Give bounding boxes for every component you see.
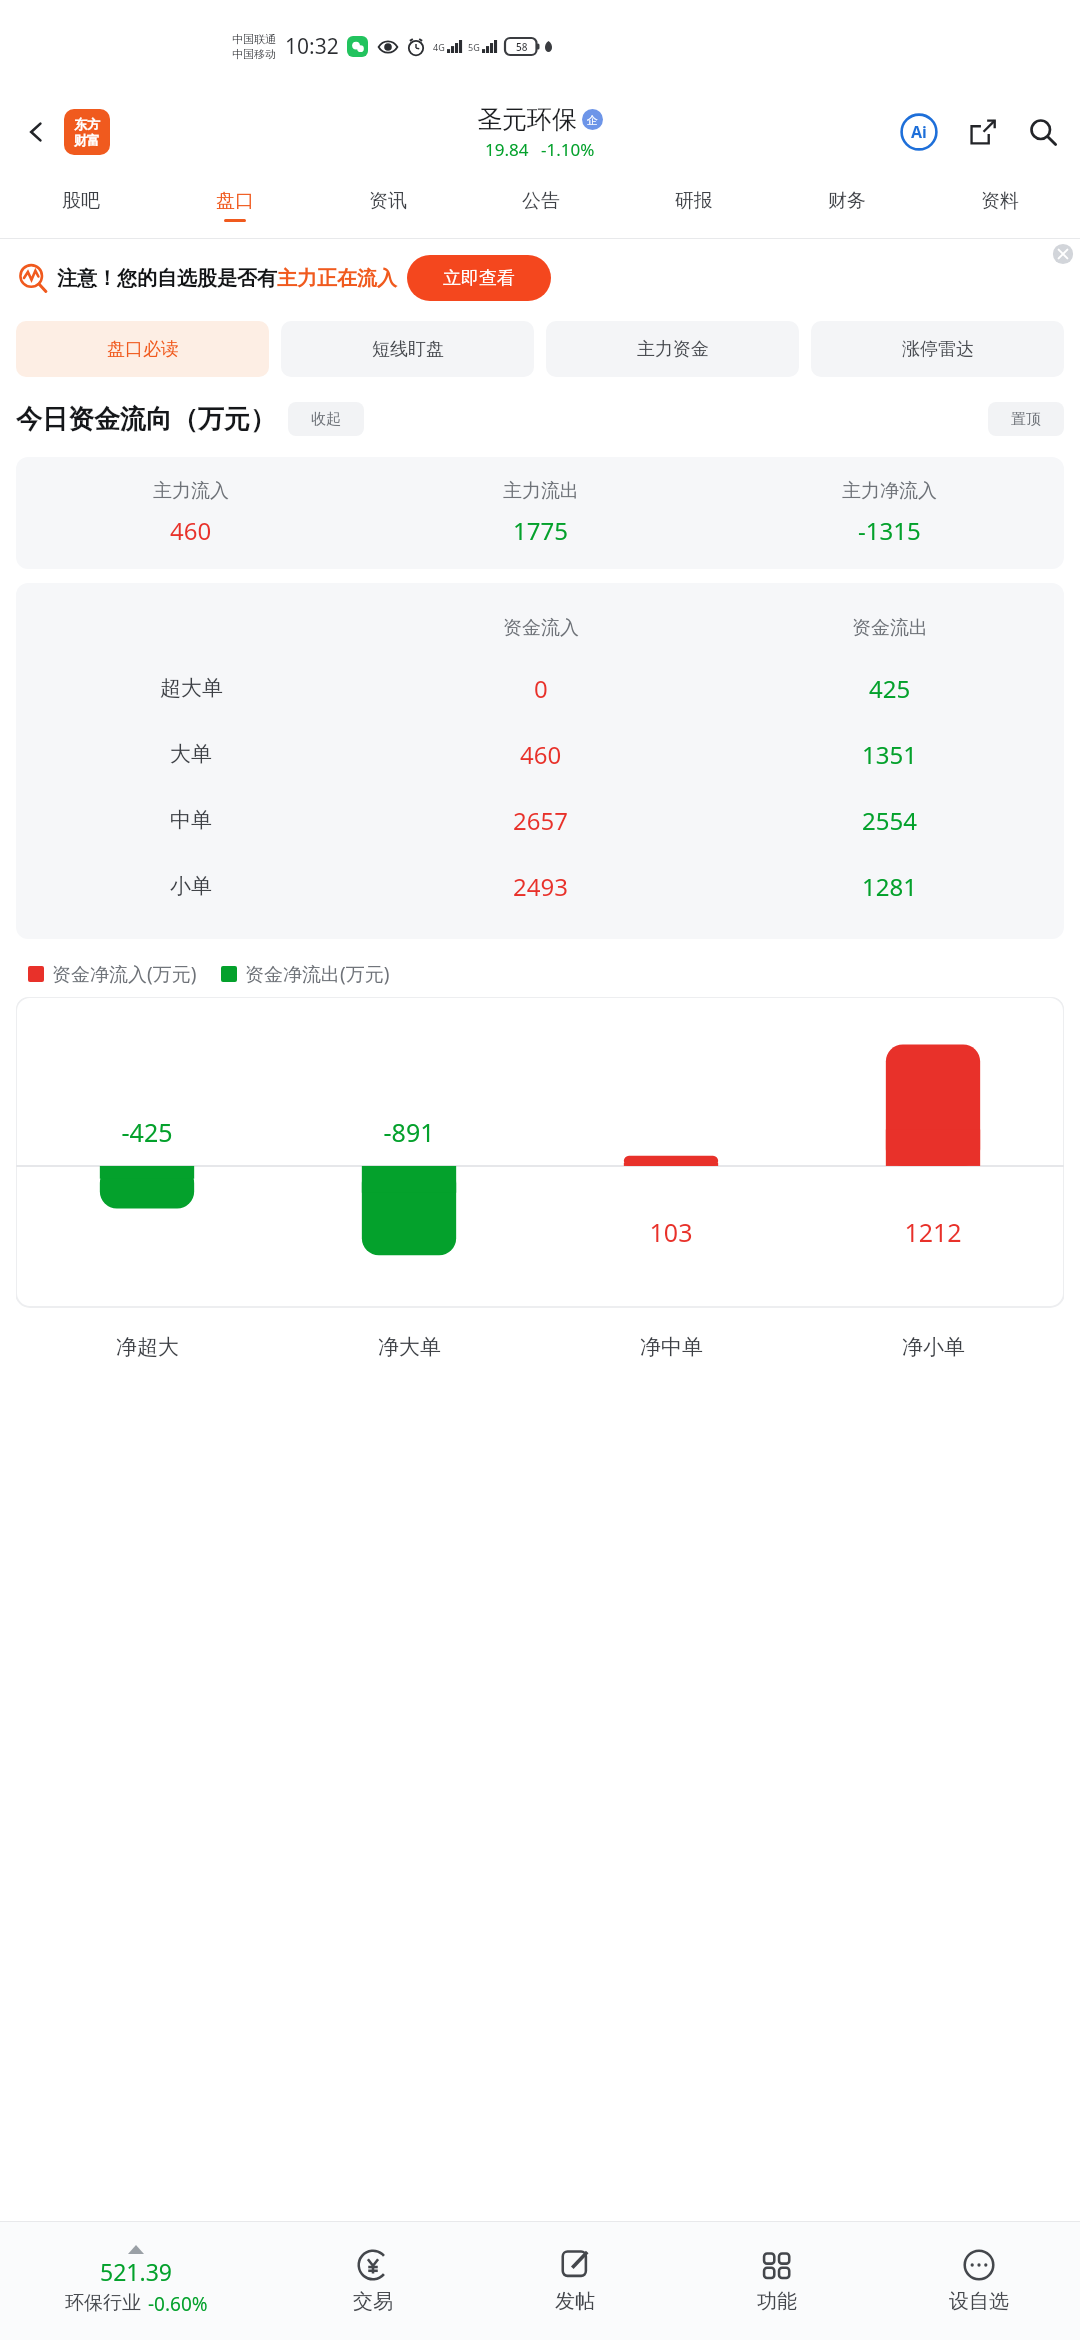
staticText: 今日资金流向（万元） <box>16 403 276 436</box>
staticText: 460 <box>520 738 562 771</box>
staticText: 521.39 <box>100 2256 172 2287</box>
button[interactable]: 设自选 <box>878 2222 1080 2340</box>
staticText: 主力正在流入 <box>277 266 397 291</box>
staticText: 资金流出 <box>852 616 928 640</box>
staticText: 置顶 <box>1011 410 1041 429</box>
staticText: 立即查看 <box>443 267 515 290</box>
button[interactable]: 发帖 <box>474 2222 676 2340</box>
staticText: 净大单 <box>378 1334 441 1360</box>
button[interactable]: 关闭 <box>1050 241 1076 267</box>
button[interactable]: 交易 <box>272 2222 474 2340</box>
staticText: 交易 <box>353 2289 393 2314</box>
button[interactable]: AI <box>896 109 942 155</box>
staticText: 净中单 <box>640 1334 703 1360</box>
staticText: 2554 <box>862 804 917 837</box>
button[interactable]: 功能 <box>676 2222 878 2340</box>
button[interactable]: 主力流入 <box>16 479 1064 547</box>
staticText: 1212 <box>802 1215 1064 1249</box>
staticText: -425 <box>16 1115 278 1149</box>
staticText: 财富 <box>74 132 100 148</box>
staticText: 收起 <box>311 410 341 429</box>
staticText: 460 <box>170 514 212 547</box>
staticText: 功能 <box>757 2289 797 2314</box>
staticText: Ai <box>911 121 927 143</box>
staticText: 净小单 <box>902 1334 965 1360</box>
button[interactable]: 公告 <box>464 172 617 238</box>
staticText: 中国移动 <box>232 47 276 61</box>
button[interactable]: 股吧 <box>4 172 158 238</box>
staticText: 主力净流入 <box>842 479 937 503</box>
staticText: 东方 <box>74 116 100 132</box>
button[interactable]: 置顶 <box>988 402 1064 436</box>
staticText: 2493 <box>513 870 568 903</box>
button[interactable]: 搜索 <box>1020 109 1066 155</box>
staticText: 5G <box>468 41 480 53</box>
staticText: 主力资金 <box>637 338 709 361</box>
staticText: 圣元环保 <box>477 104 577 135</box>
staticText: 资金净流出(万元) <box>245 961 390 987</box>
staticText: 注意！ <box>57 266 117 291</box>
button[interactable]: 资讯 <box>311 172 464 238</box>
button[interactable]: 财务 <box>770 172 923 238</box>
staticText: 小单 <box>170 873 212 899</box>
staticText: 您的自选股是否有 <box>117 266 277 291</box>
staticText: 2657 <box>513 804 568 837</box>
staticText: 主力流出 <box>503 479 579 503</box>
staticText: 4G <box>433 41 445 53</box>
staticText: 19.84 <box>485 138 529 161</box>
staticText: 企 <box>587 113 598 127</box>
button[interactable]: 盘口 <box>158 172 311 238</box>
button[interactable]: 主力资金 <box>546 321 799 377</box>
staticText: 盘口 <box>216 189 254 213</box>
staticText: 425 <box>869 672 911 705</box>
button[interactable]: 大单 <box>16 721 1064 787</box>
staticText: 研报 <box>675 189 713 213</box>
staticText: -0.60% <box>148 2291 208 2317</box>
staticText: 10:32 <box>285 32 339 61</box>
staticText: 0 <box>534 672 548 705</box>
button[interactable]: 研报 <box>617 172 770 238</box>
staticText: 主力流入 <box>153 479 229 503</box>
staticText: 超大单 <box>160 675 223 701</box>
staticText: -1.10% <box>541 138 595 161</box>
button[interactable]: 分享 <box>960 109 1006 155</box>
staticText: 财务 <box>828 189 866 213</box>
staticText: 1775 <box>513 514 568 547</box>
staticText: 58 <box>516 40 528 54</box>
button[interactable]: 返回 <box>14 110 58 154</box>
staticText: 103 <box>540 1215 802 1249</box>
staticText: 短线盯盘 <box>372 338 444 361</box>
button[interactable]: 收起 <box>288 402 364 436</box>
staticText: 涨停雷达 <box>902 338 974 361</box>
button[interactable]: 东方财富 <box>64 109 110 155</box>
staticText: -891 <box>278 1115 540 1149</box>
button[interactable]: 超大单 <box>16 655 1064 721</box>
button[interactable]: 521.39 <box>0 2222 272 2340</box>
staticText: 中单 <box>170 807 212 833</box>
staticText: 资金流入 <box>503 616 579 640</box>
staticText: 公告 <box>522 189 560 213</box>
staticText: 资金净流入(万元) <box>52 961 197 987</box>
button[interactable]: 短线盯盘 <box>281 321 534 377</box>
button[interactable]: 立即查看 <box>407 255 551 301</box>
staticText: 发帖 <box>555 2289 595 2314</box>
staticText: 大单 <box>170 741 212 767</box>
button[interactable]: 中单 <box>16 787 1064 853</box>
button[interactable]: 涨停雷达 <box>811 321 1064 377</box>
button[interactable]: 小单 <box>16 853 1064 919</box>
staticText: 资料 <box>981 189 1019 213</box>
staticText: 股吧 <box>62 189 100 213</box>
button[interactable]: 资料 <box>923 172 1076 238</box>
staticText: 净超大 <box>116 1334 179 1360</box>
staticText: 盘口必读 <box>107 338 179 361</box>
staticText: 中国联通 <box>232 32 276 46</box>
staticText: 资讯 <box>369 189 407 213</box>
staticText: 1281 <box>862 870 917 903</box>
button[interactable]: 盘口必读 <box>16 321 269 377</box>
staticText: -1315 <box>858 514 921 547</box>
staticText: 设自选 <box>949 2289 1009 2314</box>
staticText: 环保行业 <box>65 2291 141 2315</box>
staticText: 1351 <box>862 738 917 771</box>
